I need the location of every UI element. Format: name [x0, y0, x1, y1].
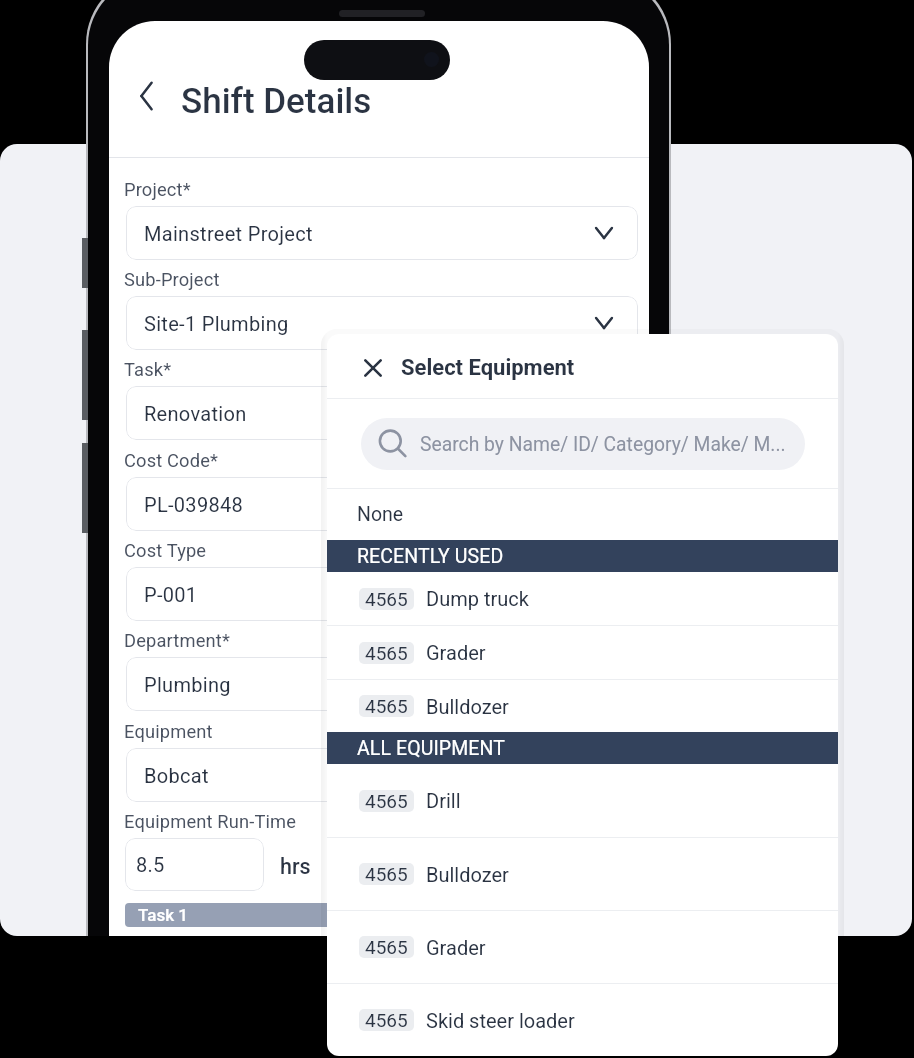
- staticText: Task 1: [138, 905, 188, 925]
- button[interactable]: P-001: [126, 567, 638, 621]
- staticText: Bulldozer: [426, 863, 509, 886]
- staticText: Site-1 Plumbing: [144, 312, 289, 335]
- staticText: Plumbing: [144, 673, 231, 696]
- staticText: Skid steer loader: [426, 1009, 575, 1032]
- staticText: Equipment: [124, 721, 213, 742]
- staticText: Cost Type: [124, 540, 207, 561]
- staticText: Bobcat: [144, 764, 209, 787]
- staticText: Grader: [426, 936, 486, 959]
- staticText: 4565: [365, 863, 408, 885]
- staticText: 4565: [365, 695, 408, 717]
- staticText: Dump truck: [426, 587, 529, 610]
- button[interactable]: 4565: [327, 911, 838, 983]
- button[interactable]: Search by Name/ ID/ Category/ Make/ M...: [361, 418, 805, 470]
- staticText: 8.5: [136, 853, 165, 876]
- staticText: Renovation: [144, 402, 247, 425]
- button[interactable]: 4565: [327, 572, 838, 625]
- button[interactable]: 8.5: [125, 838, 264, 891]
- button[interactable]: Plumbing: [126, 657, 638, 711]
- staticText: hrs: [280, 854, 311, 879]
- staticText: Department*: [124, 630, 230, 651]
- staticText: PL-039848: [144, 493, 244, 516]
- staticText: RECENTLY USED: [357, 545, 504, 568]
- staticText: Search by Name/ ID/ Category/ Make/ M...: [420, 433, 786, 456]
- button[interactable]: Close: [353, 348, 393, 388]
- staticText: 4565: [365, 936, 408, 958]
- button[interactable]: Site-1 Plumbing: [126, 296, 638, 350]
- staticText: Project*: [124, 179, 191, 200]
- button[interactable]: 4565: [327, 838, 838, 910]
- button[interactable]: Back: [130, 78, 166, 114]
- button[interactable]: 4565: [327, 680, 838, 732]
- staticText: Bulldozer: [426, 695, 509, 718]
- button[interactable]: 4565: [327, 984, 838, 1056]
- staticText: P-001: [144, 583, 198, 606]
- button[interactable]: Renovation: [126, 386, 638, 440]
- staticText: Cost Code*: [124, 450, 219, 471]
- button[interactable]: Task 1: [125, 903, 545, 927]
- staticText: Task*: [124, 359, 172, 380]
- staticText: None: [357, 503, 404, 526]
- button[interactable]: 4565: [327, 626, 838, 679]
- staticText: Grader: [426, 641, 486, 664]
- staticText: Drill: [426, 789, 461, 812]
- staticText: Select Equipment: [401, 355, 575, 381]
- button[interactable]: 4565: [327, 764, 838, 837]
- staticText: 4565: [365, 790, 408, 812]
- button[interactable]: Mainstreet Project: [126, 206, 638, 260]
- button[interactable]: PL-039848: [126, 477, 638, 531]
- staticText: ALL EQUIPMENT: [357, 737, 505, 760]
- staticText: Sub-Project: [124, 269, 220, 290]
- button[interactable]: Bobcat: [126, 748, 638, 802]
- staticText: 4565: [365, 588, 408, 610]
- staticText: 4565: [365, 642, 408, 664]
- staticText: 4565: [365, 1009, 408, 1031]
- button[interactable]: None: [327, 489, 838, 540]
- staticText: Equipment Run-Time: [124, 811, 297, 832]
- staticText: Mainstreet Project: [144, 222, 313, 245]
- staticText: Shift Details: [181, 81, 372, 122]
